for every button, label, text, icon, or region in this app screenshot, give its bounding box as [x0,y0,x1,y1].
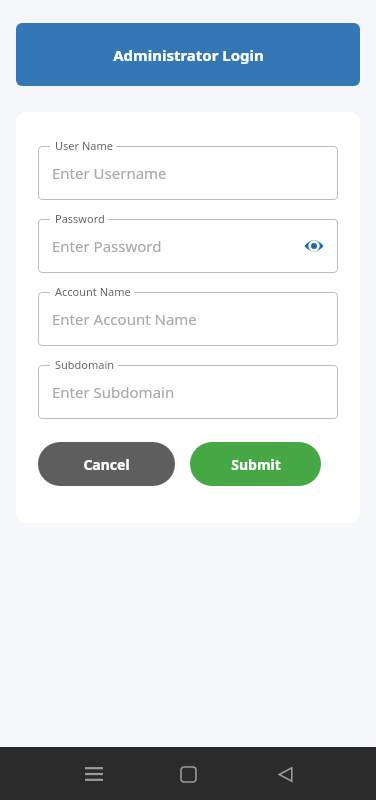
staticText: Subdomain [55,357,115,372]
staticText: Password [55,211,105,226]
button[interactable]: Back [261,750,309,798]
staticText: User Name [55,138,113,153]
staticText: Enter Account Name [52,309,197,329]
button[interactable]: Enter Username [38,138,338,200]
button[interactable]: Enter Account Name [38,284,338,346]
button[interactable]: Submit [190,442,321,486]
button[interactable]: Enter Password [38,211,338,273]
staticText: Enter Username [52,163,167,183]
button[interactable]: Cancel [38,442,175,486]
staticText: Cancel [83,455,130,474]
staticText: Administrator Login [113,45,264,65]
button[interactable]: Administrator Login [16,23,360,86]
staticText: Submit [231,455,281,474]
staticText: Enter Password [52,236,162,256]
button[interactable]: Home [164,750,212,798]
button[interactable]: Recent apps [70,750,118,798]
button[interactable]: Show password [300,232,328,260]
staticText: Account Name [55,284,131,299]
staticText: Enter Subdomain [52,382,175,402]
button[interactable]: Enter Subdomain [38,357,338,419]
